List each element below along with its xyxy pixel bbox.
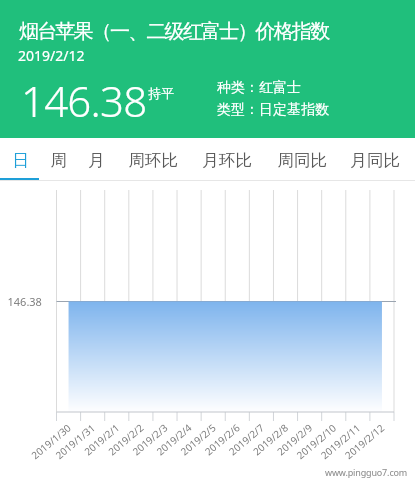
staticText: www.pingguo7.com — [325, 466, 408, 478]
button[interactable]: 周 — [39, 140, 77, 181]
button[interactable]: 日 — [1, 140, 39, 181]
staticText: 月 — [88, 150, 105, 171]
staticText: 2019/2/12 — [18, 46, 85, 65]
staticText: 月环比 — [202, 150, 252, 171]
staticText: 烟台苹果（一、二级红富士）价格指数 — [19, 19, 329, 44]
staticText: 146.38 — [21, 72, 147, 129]
staticText: 类型：日定基指数 — [217, 101, 329, 119]
staticText: 周同比 — [277, 150, 327, 171]
staticText: 日 — [12, 150, 29, 171]
button[interactable]: 周同比 — [271, 140, 333, 181]
staticText: 持平 — [148, 85, 174, 101]
button[interactable]: 周环比 — [122, 140, 184, 181]
staticText: 月同比 — [350, 150, 400, 171]
staticText: 周 — [50, 150, 67, 171]
button[interactable]: 月 — [77, 140, 115, 181]
button[interactable]: 月同比 — [344, 140, 406, 181]
button[interactable]: 月环比 — [196, 140, 258, 181]
staticText: 周环比 — [128, 150, 178, 171]
staticText: 种类：红富士 — [217, 79, 301, 97]
